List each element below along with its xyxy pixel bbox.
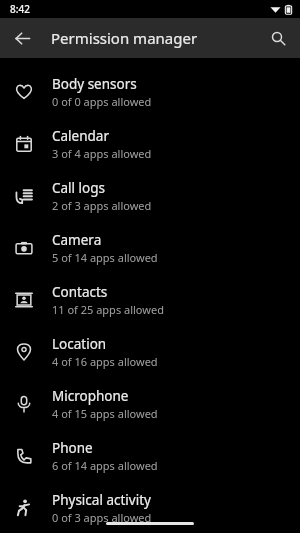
button[interactable]: Microphone — [0, 378, 300, 430]
button[interactable]: Camera — [0, 222, 300, 274]
button[interactable]: Search — [262, 22, 294, 54]
staticText: 0 of 0 apps allowed — [52, 94, 152, 109]
staticText: Microphone — [52, 387, 129, 405]
staticText: 4 of 16 apps allowed — [52, 354, 158, 369]
button[interactable]: Physical activity — [0, 482, 300, 533]
staticText: 8:42 — [10, 2, 30, 16]
staticText: 3 of 4 apps allowed — [52, 146, 152, 161]
staticText: Body sensors — [52, 75, 137, 93]
staticText: Calendar — [52, 127, 109, 145]
button[interactable]: Calendar — [0, 118, 300, 170]
button[interactable]: Call logs — [0, 170, 300, 222]
staticText: 2 of 3 apps allowed — [52, 198, 152, 213]
staticText: Location — [52, 335, 107, 353]
button[interactable]: Location — [0, 326, 300, 378]
staticText: Camera — [52, 231, 102, 249]
staticText: 4 of 15 apps allowed — [52, 406, 158, 421]
button[interactable]: Contacts — [0, 274, 300, 326]
staticText: Phone — [52, 439, 93, 457]
staticText: Contacts — [52, 283, 108, 301]
staticText: 5 of 14 apps allowed — [52, 250, 158, 265]
staticText: 0 of 3 apps allowed — [52, 510, 152, 525]
staticText: 11 of 25 apps allowed — [52, 302, 164, 317]
button[interactable]: Phone — [0, 430, 300, 482]
staticText: Call logs — [52, 179, 106, 197]
staticText: 6 of 14 apps allowed — [52, 458, 158, 473]
button[interactable]: Body sensors — [0, 66, 300, 118]
staticText: Permission manager — [51, 28, 198, 48]
button[interactable]: Back — [6, 22, 38, 54]
staticText: Physical activity — [52, 491, 151, 509]
